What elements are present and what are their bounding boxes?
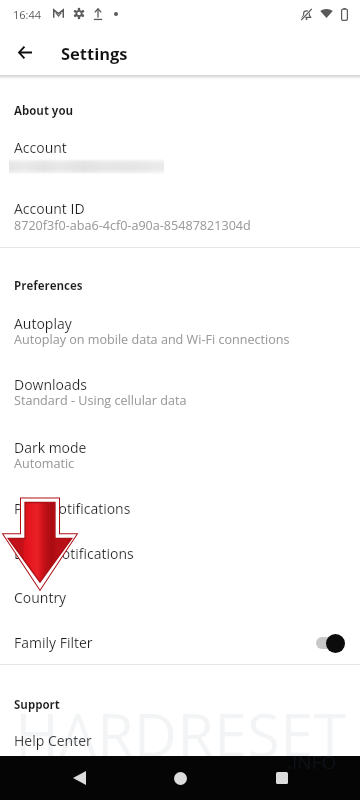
button[interactable] — [0, 579, 360, 624]
staticText: Account ID — [14, 199, 85, 218]
staticText: Dark mode — [14, 438, 87, 457]
button[interactable] — [0, 366, 360, 422]
staticText: Preferences — [14, 278, 83, 294]
staticText: Push notifications — [14, 499, 131, 518]
staticText: 8720f3f0-aba6-4cf0-a90a-85487821304d — [14, 217, 251, 234]
staticText: Account — [14, 138, 67, 157]
staticText: Downloads — [14, 375, 87, 394]
staticText: About you — [14, 103, 74, 119]
button[interactable]: Back — [4, 32, 46, 74]
button[interactable] — [0, 305, 360, 361]
staticText: Country — [14, 588, 67, 607]
staticText: Family Filter — [14, 633, 93, 652]
button[interactable] — [0, 534, 360, 579]
button[interactable]: Home — [157, 756, 203, 800]
staticText: Autoplay — [14, 314, 72, 333]
staticText: Email notifications — [14, 544, 134, 563]
staticText: .INFO — [287, 749, 337, 775]
button[interactable]: Family Filter — [0, 624, 360, 664]
button[interactable] — [0, 428, 360, 484]
button[interactable]: Recent apps — [259, 756, 305, 800]
staticText: Automatic — [14, 455, 75, 472]
staticText: Settings — [61, 42, 128, 64]
button[interactable] — [0, 723, 360, 756]
staticText: 16:44 — [13, 7, 42, 22]
button[interactable]: Back — [56, 756, 102, 800]
button[interactable] — [0, 186, 360, 238]
staticText: Standard - Using cellular data — [14, 392, 187, 409]
staticText: Help Center — [14, 731, 92, 750]
staticText: Autoplay on mobile data and Wi-Fi connec… — [14, 331, 290, 348]
button[interactable] — [0, 489, 360, 534]
staticText: HARDRESET — [15, 693, 347, 774]
button[interactable] — [0, 130, 360, 180]
staticText: Support — [14, 697, 60, 713]
